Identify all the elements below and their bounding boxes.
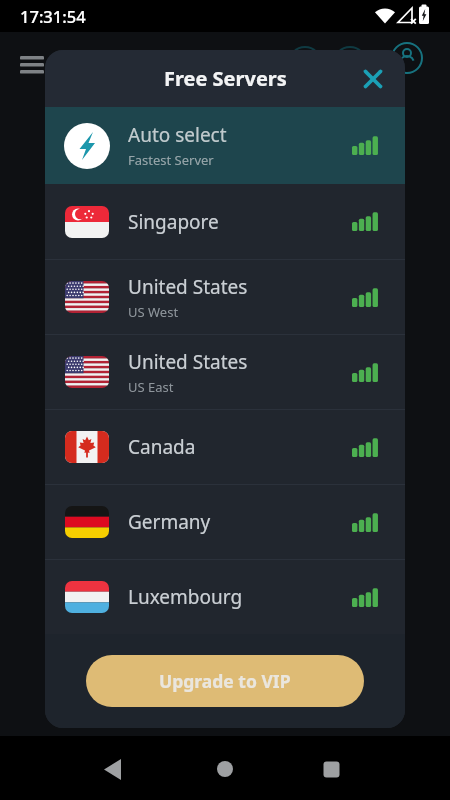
button[interactable]: Germany (45, 485, 405, 559)
staticText: Upgrade to VIP (159, 669, 291, 693)
staticText: Singapore (128, 209, 219, 235)
staticText: US East (128, 378, 174, 396)
button[interactable]: United States (45, 260, 405, 334)
staticText: Free Servers (164, 65, 287, 92)
staticText: Germany (128, 509, 211, 535)
button[interactable]: Upgrade to VIP (86, 655, 364, 707)
button[interactable] (362, 68, 384, 90)
button[interactable]: Luxembourg (45, 560, 405, 634)
button[interactable]: Singapore (45, 184, 405, 259)
staticText: 17:31:54 (20, 5, 86, 27)
staticText: Fastest Server (128, 151, 214, 169)
staticText: Luxembourg (128, 584, 243, 610)
staticText: US West (128, 303, 179, 321)
button[interactable]: United States (45, 335, 405, 409)
button[interactable]: Canada (45, 410, 405, 484)
staticText: Canada (128, 434, 196, 460)
button[interactable]: Auto select (45, 107, 405, 184)
staticText: United States (128, 274, 248, 300)
staticText: Auto select (128, 122, 227, 148)
staticText: United States (128, 349, 248, 375)
